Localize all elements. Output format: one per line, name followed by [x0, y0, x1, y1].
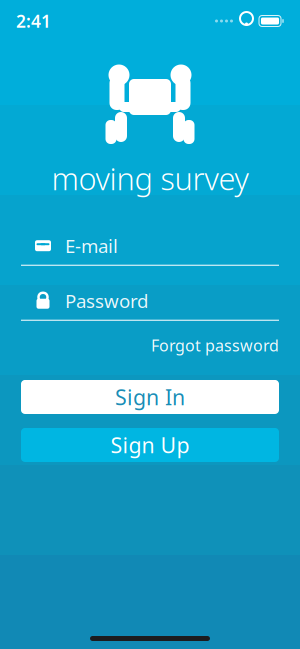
- button[interactable]: E-mail: [21, 231, 279, 266]
- staticText: Password: [65, 288, 148, 313]
- staticText: E-mail: [65, 233, 118, 258]
- button[interactable]: Password: [21, 286, 279, 321]
- staticText: moving survey: [51, 158, 248, 199]
- button[interactable]: Forgot password: [151, 331, 279, 360]
- staticText: Forgot password: [151, 335, 279, 356]
- button[interactable]: Sign Up: [21, 428, 279, 462]
- staticText: 2:41: [16, 9, 51, 32]
- button[interactable]: Sign In: [21, 380, 279, 414]
- staticText: Sign In: [115, 383, 185, 411]
- staticText: Sign Up: [110, 431, 189, 459]
